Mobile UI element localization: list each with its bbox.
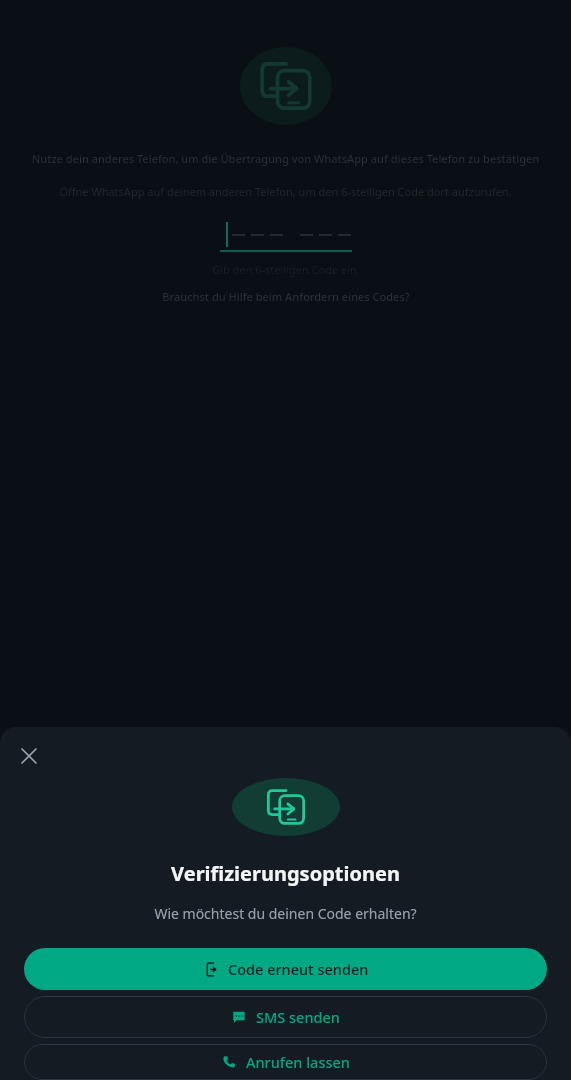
button[interactable]: Anrufen lassen <box>24 1044 547 1080</box>
staticText: Nutze dein anderes Telefon, um die Übert… <box>22 151 549 166</box>
button[interactable]: Schließen <box>12 739 46 773</box>
button[interactable]: Brauchst du Hilfe beim Anfordern eines C… <box>162 289 410 304</box>
staticText: Gib den 6-stelligen Code ein. <box>212 262 360 277</box>
staticText: Verifizierungsoptionen <box>171 860 400 887</box>
button[interactable]: Code erneut senden <box>24 948 547 990</box>
staticText: SMS senden <box>256 1007 340 1027</box>
staticText: Öffne WhatsApp auf deinem anderen Telefo… <box>40 184 531 199</box>
button[interactable]: SMS senden <box>24 996 547 1038</box>
staticText: Anrufen lassen <box>246 1052 350 1072</box>
staticText: Code erneut senden <box>228 959 369 979</box>
staticText: Wie möchtest du deinen Code erhalten? <box>154 904 417 923</box>
